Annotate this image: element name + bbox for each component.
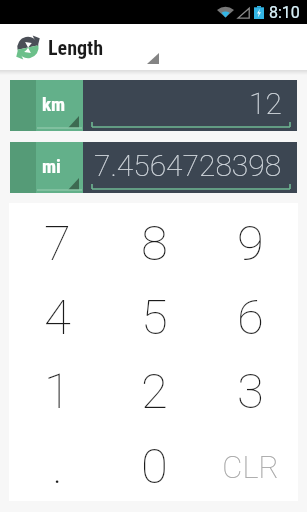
button[interactable]: 7 [9,203,106,277]
button[interactable]: 1 [9,351,106,426]
button[interactable]: 2 [106,351,202,426]
button[interactable]: 12 [83,80,297,131]
staticText: CLR [222,449,279,485]
button[interactable]: 3 [202,351,298,426]
staticText: km [42,93,66,115]
button[interactable]: . [9,426,106,501]
staticText: 9 [237,215,264,272]
staticText: 7.4564728398 [94,148,282,183]
button[interactable]: km [10,80,83,131]
button[interactable]: 5 [106,277,202,351]
staticText: 6 [237,289,264,346]
button[interactable]: 6 [202,277,298,351]
staticText: 1 [44,363,71,420]
button[interactable]: 4 [9,277,106,351]
staticText: 3 [237,363,264,420]
staticText: 8 [141,215,168,272]
button[interactable]: 9 [202,203,298,277]
staticText: 8:10 [269,3,300,22]
button[interactable]: CLR [202,426,298,501]
staticText: mi [42,155,61,177]
button[interactable]: 0 [106,426,202,501]
button[interactable]: 7.4564728398 [83,142,297,193]
staticText: . [52,438,63,495]
staticText: 12 [249,86,282,121]
staticText: Length [48,36,104,59]
button[interactable]: mi [10,142,83,193]
staticText: 5 [141,289,168,346]
button[interactable]: 8 [106,203,202,277]
staticText: 2 [141,363,168,420]
staticText: 0 [141,438,168,495]
button[interactable]: Length category [0,24,307,70]
staticText: 7 [44,215,71,272]
staticText: 4 [44,289,71,346]
